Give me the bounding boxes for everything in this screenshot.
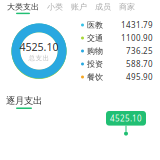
staticText: 大类支出 [7,2,39,12]
button[interactable]: 投资 [78,57,156,70]
staticText: 588.70 [126,59,153,69]
button[interactable]: 商家 [115,1,139,15]
button[interactable]: 成员 [91,1,115,15]
button[interactable]: 餐饮 [78,70,156,83]
staticText: 购物 [87,46,103,56]
staticText: 736.25 [126,46,153,56]
button[interactable]: 小类 [43,1,67,15]
staticText: 495.90 [126,72,153,82]
staticText: 逐月支出 [6,95,42,106]
staticText: 1100.90 [121,33,153,43]
staticText: 成员 [95,2,111,12]
staticText: 小类 [47,2,63,12]
button[interactable]: 账户 [67,1,91,15]
staticText: 医教 [87,20,103,30]
button[interactable]: 购物 [78,44,156,57]
button[interactable]: 交通 [78,31,156,44]
staticText: 账户 [71,2,87,12]
staticText: 4525.10 [19,40,58,54]
button[interactable]: 大类支出 [3,1,43,15]
staticText: 交通 [87,33,103,43]
staticText: 4525.10 [110,113,142,124]
button[interactable]: 医教 [78,18,156,31]
staticText: 投资 [87,59,103,69]
staticText: 总支出 [28,54,49,62]
staticText: 商家 [119,2,135,12]
staticText: 1431.79 [121,20,153,30]
staticText: 餐饮 [87,72,103,82]
